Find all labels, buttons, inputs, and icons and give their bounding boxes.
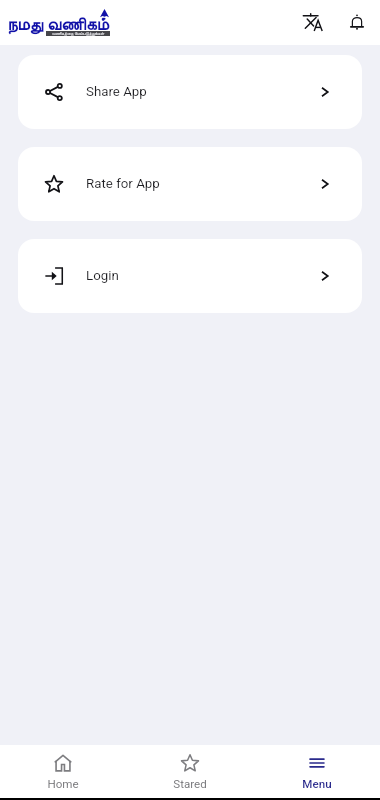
staticText: Stared	[173, 777, 207, 791]
button[interactable]: Translate	[293, 2, 335, 44]
button[interactable]: Menu	[253, 745, 380, 798]
button[interactable]: Stared	[126, 745, 253, 798]
staticText: Menu	[302, 777, 332, 791]
staticText: Share App	[86, 84, 147, 100]
button[interactable]: Notifications	[335, 2, 377, 44]
button[interactable]: Rate for App	[18, 147, 362, 221]
button[interactable]: Login	[18, 239, 362, 313]
staticText: Login	[86, 268, 119, 284]
staticText: Rate for App	[86, 176, 160, 192]
staticText: வணிகத்தை மேம்படுத்துங்கள்	[52, 31, 105, 36]
staticText: நமது வணிகம்	[7, 12, 109, 35]
button[interactable]: Share App	[18, 55, 362, 129]
button[interactable]: Namathu Vanigam	[0, 0, 112, 45]
staticText: Home	[47, 777, 79, 791]
button[interactable]: Home	[0, 745, 126, 798]
